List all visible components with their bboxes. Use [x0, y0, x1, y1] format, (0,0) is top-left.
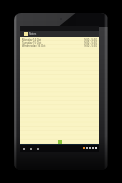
staticText: Notes	[29, 32, 37, 36]
staticText: Monday 14 Oct	[22, 38, 42, 41]
button[interactable]: Monday 14 Oct	[20, 38, 99, 41]
button[interactable]: Recents	[36, 145, 40, 152]
staticText: Tuesday 15 Oct	[22, 41, 42, 44]
staticText: 9:00 - 5:30	[84, 44, 97, 47]
button[interactable]: Home	[29, 145, 33, 152]
button[interactable]: Wednesday 16 Oct	[20, 44, 99, 47]
button[interactable]: Tuesday 15 Oct	[20, 41, 99, 44]
button[interactable]: Notes	[20, 31, 99, 37]
staticText: 9:00 - 5:30	[84, 38, 97, 41]
staticText: 9:00 - 5:30	[84, 41, 97, 44]
staticText: Wednesday 16 Oct	[22, 44, 46, 47]
button[interactable]: Back	[22, 145, 26, 152]
